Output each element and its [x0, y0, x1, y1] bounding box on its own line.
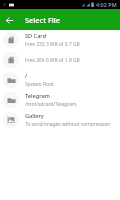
button[interactable]: Free 264.6 MB of 1.9 GB: [0, 50, 120, 70]
button[interactable]: Telegram: [0, 90, 120, 110]
staticText: To send images without compression: [25, 121, 111, 128]
staticText: /: [25, 72, 28, 80]
staticText: Free 264.6 MB of 1.9 GB: [25, 57, 80, 64]
button[interactable]: SD Card: [0, 30, 120, 50]
button[interactable]: /: [0, 70, 120, 90]
staticText: Telegram: [25, 92, 50, 100]
staticText: 4:02 PM: [96, 1, 117, 8]
staticText: SD Card: [25, 32, 47, 40]
staticText: System Root: [25, 81, 54, 88]
button[interactable]: Back: [2, 13, 16, 27]
staticText: /mnt/sdcard/Telegram: [25, 101, 77, 108]
staticText: Gallery: [25, 112, 44, 120]
staticText: Select File: [25, 15, 61, 25]
button[interactable]: Gallery: [0, 110, 120, 130]
staticText: Free 333.3 MB of 3.7 GB: [25, 41, 80, 48]
